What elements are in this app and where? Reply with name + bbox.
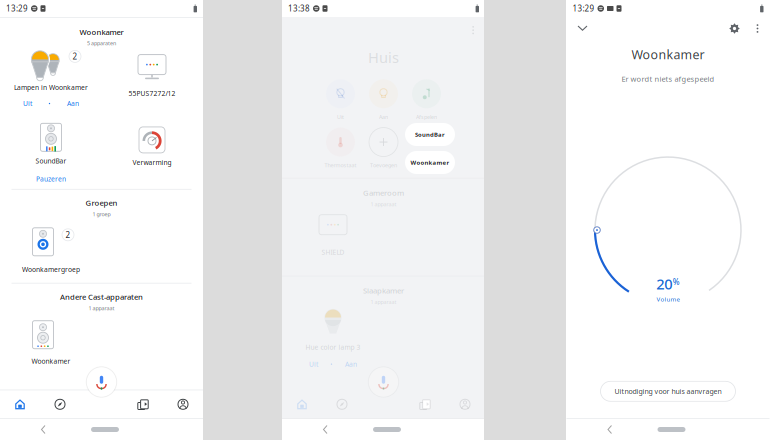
staticText: 2 [72,51,77,62]
button[interactable]: SoundBar [0,124,101,189]
staticText: Woonkamer [31,357,70,366]
staticText: 1 groep [92,210,110,218]
button[interactable]: Woonkamer [405,151,455,174]
staticText: Groepen [85,198,117,208]
button[interactable]: Home [282,390,322,418]
staticText: SoundBar [415,130,445,138]
staticText: SHIELD [321,248,344,257]
staticText: Woonkamer [79,27,123,37]
button[interactable]: Uitnodiging voor huis aanvragen [600,381,735,401]
button[interactable]: Feed [123,390,163,418]
staticText: % [673,276,680,287]
staticText: 2 [65,229,70,240]
staticText: 55PUS7272/12 [128,89,175,98]
button[interactable]: Feed [405,390,445,418]
staticText: Aan [379,113,388,121]
button[interactable]: Woonkamer [0,319,101,375]
staticText: Andere Cast-apparaten [60,291,143,302]
button[interactable]: Google Assistant [367,366,399,398]
button[interactable]: Account [163,390,203,418]
staticText: Pauzeren [36,174,66,183]
staticText: Gameroom [363,187,404,198]
staticText: Afspelen [416,113,437,121]
staticText: 1 apparaat [88,304,114,312]
button[interactable]: Home [0,390,40,418]
button[interactable]: 2 [0,49,101,124]
staticText: Woonkamergroep [22,265,80,274]
staticText: Volume [656,295,679,303]
button[interactable]: Verwarming [101,124,202,189]
staticText: Er wordt niets afgespeeld [621,74,714,84]
staticText: Verwarming [132,158,171,167]
button[interactable]: More options [746,17,768,40]
button[interactable]: Account [445,390,485,418]
staticText: 13:29 [6,3,28,14]
staticText: 13:38 [288,3,310,14]
staticText: Aan [67,99,79,108]
staticText: Toevoegen [370,161,397,169]
staticText: Aan [345,360,357,369]
button[interactable]: Explore [40,390,80,418]
staticText: 5 apparaten [87,40,116,47]
button[interactable]: 2 [0,225,101,283]
staticText: 13:29 [572,3,594,14]
staticText: Lampen in Woonkamer [14,83,88,92]
button[interactable]: Explore [322,390,362,418]
button[interactable]: Collapse [568,17,596,40]
staticText: Uitnodiging voor huis aanvragen [614,387,721,396]
staticText: SoundBar [35,156,66,165]
staticText: Woonkamer [410,158,449,166]
staticText: Uit [337,113,344,121]
staticText: Uit [309,360,318,369]
staticText: Thermostaat [324,161,356,169]
staticText: Slaapkamer [363,285,404,296]
staticText: 1 apparaat [370,200,396,208]
staticText: 20 [656,274,672,294]
staticText: 1 apparaat [370,298,396,306]
button[interactable]: SoundBar [405,123,455,146]
button[interactable]: Settings [722,17,746,40]
staticText: Uit [23,99,32,108]
staticText: Huis [368,47,399,67]
staticText: Woonkamer [631,46,704,63]
button[interactable]: 55PUS7272/12 [101,49,202,124]
button[interactable]: Google Assistant [85,366,117,398]
staticText: Hue color lamp 3 [305,342,360,352]
